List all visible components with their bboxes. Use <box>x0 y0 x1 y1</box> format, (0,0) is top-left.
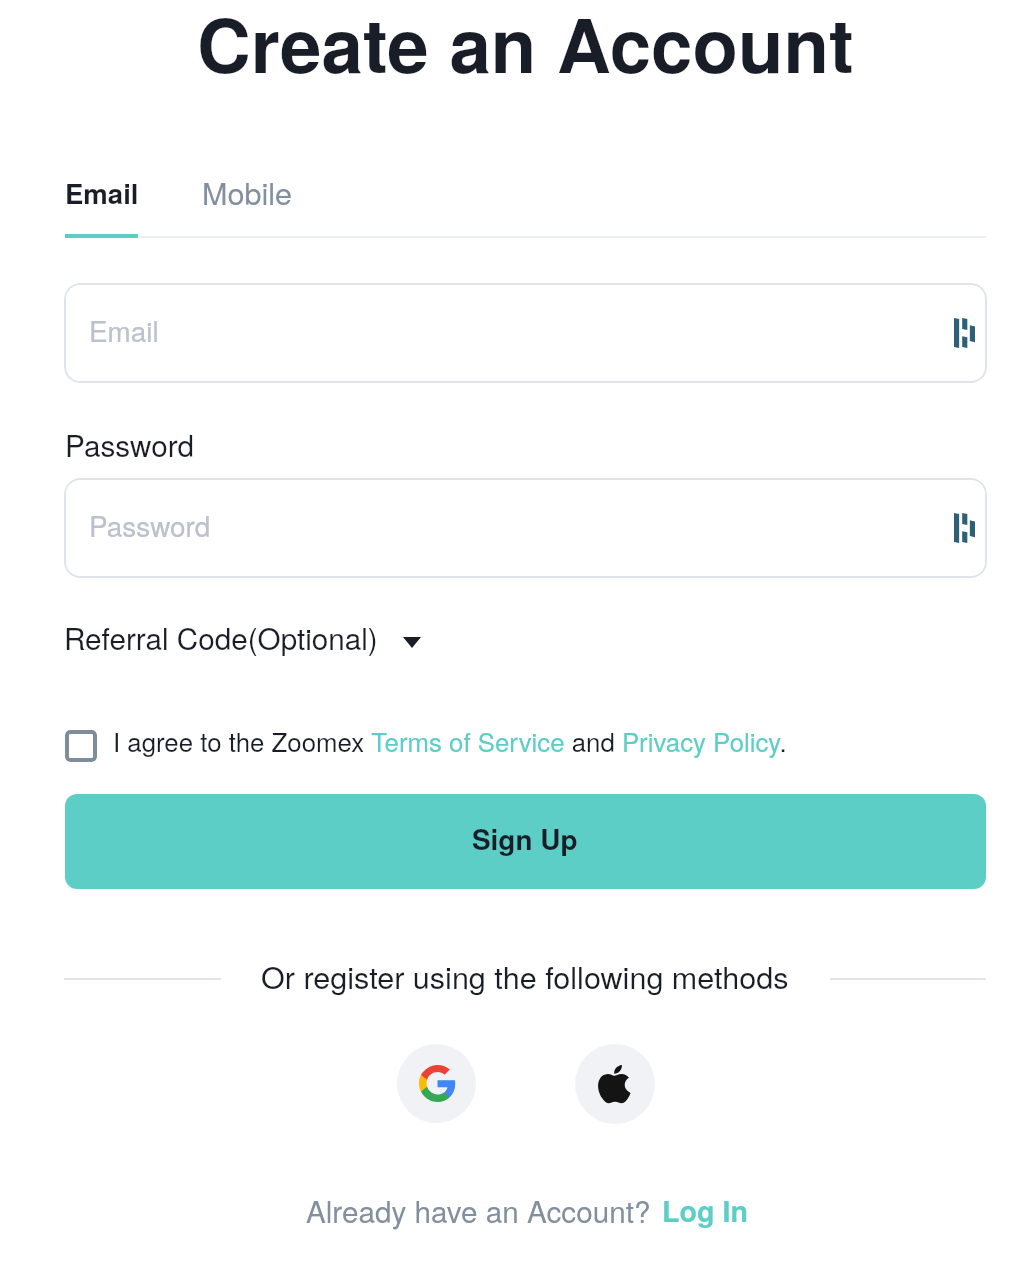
staticText: Sign Up <box>472 819 578 859</box>
button[interactable]: Sign up with Google <box>397 1044 476 1123</box>
staticText: Or register using the following methods <box>261 954 789 998</box>
button[interactable]: Referral Code(Optional) <box>60 620 430 668</box>
other: Autofill from password manager <box>954 318 975 348</box>
staticText: Email <box>65 173 139 212</box>
staticText: Email <box>89 310 159 350</box>
button[interactable]: I agree to the Zoomex Terms of Service a… <box>61 724 791 768</box>
staticText: Create an Account <box>197 0 854 96</box>
staticText: Mobile <box>202 170 293 214</box>
button[interactable]: Mobile <box>193 166 299 242</box>
button[interactable]: Log In <box>656 1192 750 1236</box>
staticText: Log In <box>662 1190 748 1231</box>
staticText: Already have an Account? <box>306 1189 651 1231</box>
button[interactable]: Sign Up <box>65 794 986 889</box>
button[interactable]: Email <box>64 283 987 383</box>
staticText: Password <box>65 423 195 465</box>
button[interactable]: Email <box>57 166 147 242</box>
button[interactable]: Password <box>64 478 987 578</box>
button[interactable]: Sign up with Apple <box>575 1044 655 1124</box>
staticText: I agree to the Zoomex Terms of Service a… <box>113 722 787 759</box>
staticText: Password <box>89 505 211 545</box>
staticText: Referral Code(Optional) <box>64 616 378 658</box>
other: Autofill from password manager <box>954 513 975 543</box>
